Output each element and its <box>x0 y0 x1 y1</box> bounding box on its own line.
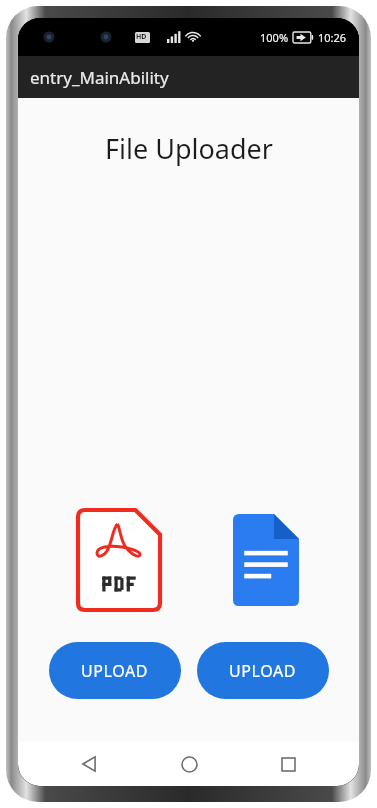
staticText: UPLOAD <box>229 660 297 682</box>
staticText: HD <box>136 32 147 42</box>
staticText: File Uploader <box>105 130 273 167</box>
button[interactable]: Recent apps <box>260 742 316 786</box>
staticText: UPLOAD <box>81 660 149 682</box>
button[interactable]: Back <box>61 742 117 786</box>
button[interactable]: entry_MainAbility <box>18 56 359 98</box>
button[interactable]: PDF file <box>76 508 162 612</box>
button[interactable]: Home <box>161 742 217 786</box>
staticText: 100% <box>260 30 289 45</box>
button[interactable]: UPLOAD <box>49 642 181 699</box>
button[interactable]: Document file <box>231 512 301 608</box>
button[interactable]: UPLOAD <box>197 642 329 699</box>
staticText: 10:26 <box>318 30 347 45</box>
staticText: entry_MainAbility <box>30 66 169 89</box>
